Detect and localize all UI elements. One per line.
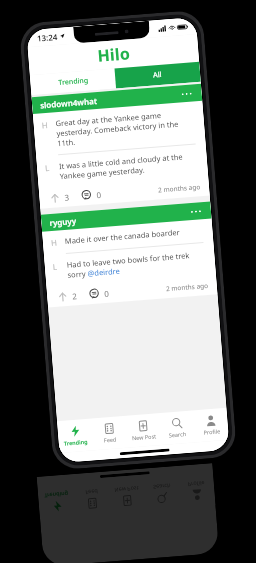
- staticText: Trending: [58, 76, 89, 88]
- staticText: 2: [72, 290, 78, 302]
- staticText: Trending: [63, 438, 88, 447]
- staticText: H: [41, 118, 56, 130]
- staticText: H: [50, 236, 65, 248]
- staticText: 2 months ago: [166, 281, 209, 293]
- staticText: Feed: [85, 488, 98, 496]
- staticText: 0: [96, 189, 102, 200]
- button[interactable]: Upvote: [47, 190, 62, 205]
- button[interactable]: Comments: [79, 188, 94, 203]
- staticText: 13:24: [36, 31, 58, 43]
- staticText: slodown4what: [40, 95, 97, 110]
- button[interactable]: Comments: [87, 286, 102, 301]
- staticText: Feed: [103, 435, 117, 443]
- staticText: New Post: [131, 432, 157, 441]
- staticText: It was a little cold and cloudy at the Y…: [59, 150, 200, 181]
- staticText: 3: [64, 191, 70, 203]
- staticText: New Post: [114, 485, 139, 494]
- staticText: Profile: [203, 427, 220, 436]
- staticText: 2 months ago: [158, 182, 201, 194]
- button[interactable]: Profile: [193, 408, 229, 442]
- button[interactable]: Profile: [178, 473, 215, 508]
- staticText: Great day at the Yankee game yesterday. …: [55, 107, 197, 148]
- button[interactable]: Trending: [37, 484, 76, 519]
- button[interactable]: More options: [188, 204, 204, 219]
- button[interactable]: Trending: [57, 418, 93, 453]
- button[interactable]: Feed: [73, 481, 111, 516]
- button[interactable]: Search: [159, 410, 195, 445]
- staticText: Had to leave two bowls for the trek sorr…: [66, 249, 207, 280]
- staticText: 0: [104, 288, 109, 299]
- staticText: Search: [153, 483, 171, 491]
- button[interactable]: All: [114, 62, 201, 88]
- button[interactable]: New Post: [125, 413, 161, 448]
- button[interactable]: New Post: [108, 479, 146, 513]
- staticText: L: [45, 161, 59, 173]
- staticText: Made it over the canada boarder: [64, 227, 181, 246]
- button[interactable]: Trending: [30, 68, 116, 95]
- button[interactable]: Feed: [91, 416, 127, 450]
- staticText: ryguyy: [49, 215, 77, 228]
- button[interactable]: Upvote: [55, 289, 70, 304]
- staticText: Profile: [187, 480, 205, 488]
- staticText: Search: [168, 430, 187, 438]
- staticText: Trending: [44, 491, 68, 499]
- staticText: Hilo: [97, 42, 131, 67]
- staticText: L: [52, 260, 67, 272]
- button[interactable]: slodown4what: [31, 84, 210, 209]
- button[interactable]: More options: [179, 86, 194, 101]
- button[interactable]: ryguyy: [41, 201, 218, 307]
- staticText: All: [153, 70, 163, 80]
